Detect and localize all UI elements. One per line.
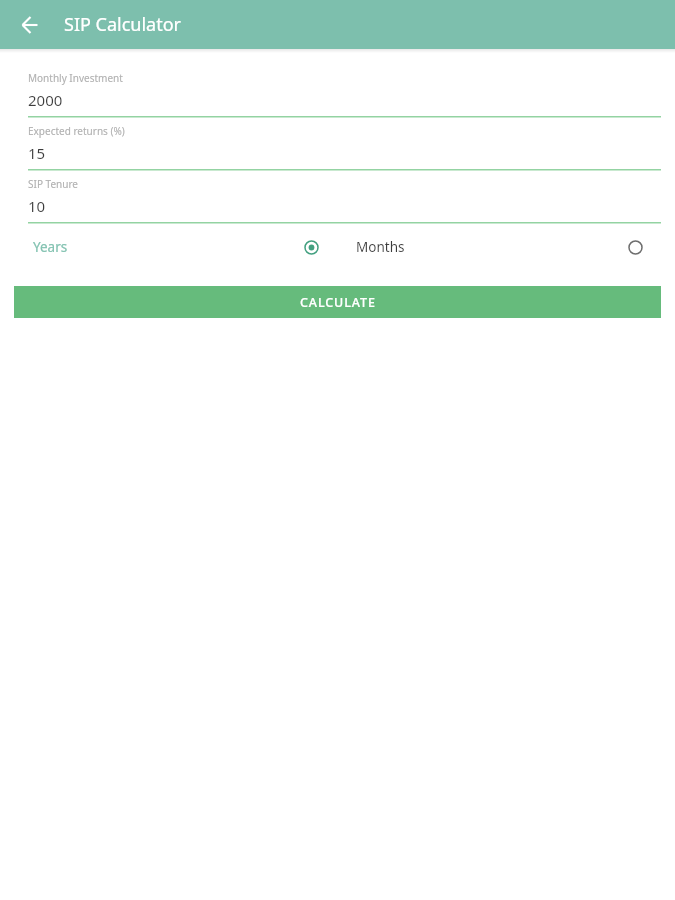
staticText: 10 <box>28 196 46 216</box>
staticText: Years <box>33 238 68 256</box>
button[interactable]: Monthly Investment <box>28 71 661 118</box>
button[interactable]: Years <box>14 232 337 262</box>
staticText: Months <box>356 238 405 256</box>
staticText: Expected returns (%) <box>28 124 125 138</box>
button[interactable]: SIP Tenure <box>28 177 661 224</box>
staticText: Monthly Investment <box>28 71 123 85</box>
staticText: 2000 <box>28 90 63 110</box>
staticText: SIP Calculator <box>64 12 181 37</box>
staticText: SIP Tenure <box>28 177 78 191</box>
button[interactable]: Months <box>337 232 661 262</box>
button[interactable]: Back <box>12 7 48 43</box>
button[interactable]: CALCULATE <box>14 286 661 318</box>
staticText: CALCULATE <box>300 294 376 311</box>
staticText: 15 <box>28 143 46 163</box>
button[interactable]: Expected returns (%) <box>28 124 661 171</box>
